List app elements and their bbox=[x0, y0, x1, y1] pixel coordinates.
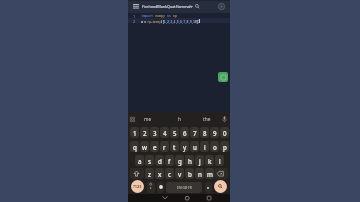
button[interactable] bbox=[214, 180, 227, 193]
staticText: import numpy as np bbox=[141, 13, 177, 18]
staticText: e bbox=[153, 143, 157, 151]
button[interactable]: g bbox=[175, 155, 184, 166]
staticText: EN·GB·FR bbox=[177, 185, 192, 190]
button[interactable]: h bbox=[185, 155, 194, 166]
button[interactable]: 0 bbox=[220, 127, 229, 138]
staticText: 1 bbox=[133, 129, 137, 137]
button[interactable]: r bbox=[160, 141, 169, 152]
button[interactable]: m bbox=[205, 168, 214, 179]
button[interactable]: ?123 bbox=[131, 180, 144, 193]
button[interactable]: 8 bbox=[200, 127, 209, 138]
button[interactable]: 6 bbox=[180, 127, 189, 138]
staticText: me bbox=[144, 116, 152, 123]
staticText: FirehandBlankQuatHammal bbox=[142, 4, 191, 9]
staticText: d bbox=[158, 157, 162, 165]
staticText: 4 bbox=[163, 129, 167, 137]
staticText: m bbox=[207, 170, 213, 178]
button[interactable] bbox=[207, 196, 211, 200]
button[interactable] bbox=[214, 168, 228, 179]
button[interactable]: p bbox=[220, 141, 229, 152]
button[interactable]: x bbox=[155, 168, 164, 179]
staticText: w bbox=[142, 143, 147, 151]
staticText: 2 bbox=[133, 19, 136, 24]
button[interactable] bbox=[157, 182, 164, 193]
button[interactable]: v bbox=[175, 168, 184, 179]
button[interactable]: 5 bbox=[170, 127, 179, 138]
staticText: f bbox=[168, 157, 171, 165]
staticText: i bbox=[204, 143, 206, 151]
button[interactable]: j bbox=[195, 155, 204, 166]
button[interactable]: a bbox=[135, 155, 144, 166]
button[interactable]: 7 bbox=[190, 127, 199, 138]
button[interactable]: the bbox=[196, 113, 218, 125]
button[interactable]: n bbox=[195, 168, 204, 179]
staticText: n bbox=[198, 170, 202, 178]
staticText: h bbox=[188, 157, 192, 165]
staticText: 6 bbox=[183, 129, 187, 137]
staticText: the bbox=[203, 116, 211, 123]
staticText: q bbox=[133, 143, 137, 151]
button[interactable]: w bbox=[140, 141, 149, 152]
staticText: 3 bbox=[153, 129, 157, 137]
staticText: z bbox=[148, 170, 151, 178]
button[interactable]: 9 bbox=[210, 127, 219, 138]
button[interactable]: me bbox=[139, 113, 157, 125]
button[interactable]: b bbox=[185, 168, 194, 179]
staticText: 9 bbox=[213, 129, 217, 137]
button[interactable]: 4 bbox=[160, 127, 169, 138]
button[interactable]: d bbox=[155, 155, 164, 166]
button[interactable]: k bbox=[205, 155, 214, 166]
staticText: t bbox=[173, 143, 176, 151]
staticText: ?123 bbox=[133, 184, 142, 189]
staticText: s bbox=[148, 157, 152, 165]
button[interactable]: h bbox=[170, 113, 188, 125]
staticText: x bbox=[158, 170, 162, 178]
staticText: 7 bbox=[193, 129, 197, 137]
button[interactable]: 3 bbox=[150, 127, 159, 138]
button[interactable]: e bbox=[150, 141, 159, 152]
button[interactable] bbox=[147, 182, 155, 193]
button[interactable] bbox=[162, 196, 168, 199]
button[interactable]: c bbox=[165, 168, 174, 179]
staticText: b bbox=[188, 170, 192, 178]
button[interactable] bbox=[205, 182, 212, 193]
staticText: j bbox=[199, 157, 201, 165]
staticText: a bbox=[138, 157, 142, 165]
staticText: 2 bbox=[143, 129, 147, 137]
button[interactable]: y bbox=[180, 141, 189, 152]
staticText: 5 bbox=[173, 129, 177, 137]
staticText: g bbox=[178, 157, 182, 165]
staticText: 8 bbox=[203, 129, 207, 137]
button[interactable]: q bbox=[130, 141, 139, 152]
staticText: l bbox=[219, 157, 221, 165]
button[interactable] bbox=[130, 168, 144, 179]
button[interactable]: u bbox=[190, 141, 199, 152]
staticText: u bbox=[193, 143, 197, 151]
button[interactable]: i bbox=[200, 141, 209, 152]
button[interactable]: o bbox=[210, 141, 219, 152]
button[interactable]: 2 bbox=[140, 127, 149, 138]
button[interactable] bbox=[185, 196, 189, 200]
button[interactable]: f bbox=[165, 155, 174, 166]
staticText: 1 bbox=[133, 14, 136, 19]
staticText: p bbox=[223, 143, 227, 151]
staticText: o bbox=[213, 143, 217, 151]
staticText: 0 bbox=[223, 129, 227, 137]
button[interactable]: 1 bbox=[130, 127, 139, 138]
staticText: r bbox=[163, 143, 166, 151]
button[interactable]: EN·GB·FR bbox=[166, 182, 202, 193]
staticText: h bbox=[178, 116, 181, 123]
button[interactable] bbox=[218, 72, 228, 82]
staticText: v bbox=[178, 170, 182, 178]
button[interactable]: l bbox=[215, 155, 224, 166]
staticText: c bbox=[168, 170, 172, 178]
staticText: a = np.array([1,2,3,4,5,6,7,8,9,10]) bbox=[141, 19, 200, 23]
button[interactable]: z bbox=[145, 168, 154, 179]
button[interactable]: s bbox=[145, 155, 154, 166]
button[interactable]: t bbox=[170, 141, 179, 152]
button[interactable]: FirehandBlankQuatHammal bbox=[128, 0, 230, 13]
staticText: y bbox=[183, 143, 187, 151]
staticText: k bbox=[208, 157, 212, 165]
